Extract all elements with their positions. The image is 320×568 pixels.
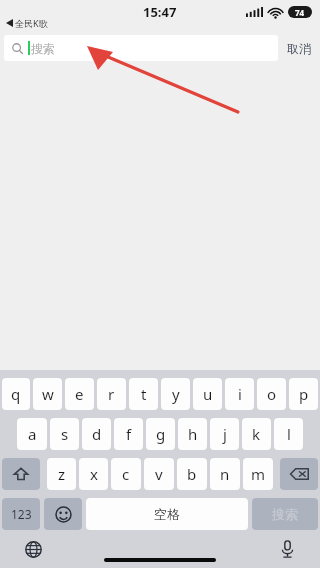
button[interactable]: u: [193, 378, 222, 410]
staticText: m: [251, 464, 266, 484]
button[interactable]: k: [242, 418, 271, 450]
staticText: i: [238, 384, 242, 404]
button[interactable]: f: [114, 418, 143, 450]
button[interactable]: a: [17, 418, 47, 450]
button[interactable]: 123: [2, 498, 40, 530]
staticText: l: [287, 424, 291, 444]
button[interactable]: i: [225, 378, 254, 410]
staticText: 15:47: [143, 3, 177, 21]
button[interactable]: t: [129, 378, 158, 410]
staticText: v: [155, 464, 163, 484]
staticText: z: [58, 464, 66, 484]
button[interactable]: Delete: [280, 458, 318, 490]
staticText: a: [28, 424, 37, 444]
staticText: h: [188, 424, 198, 444]
staticText: e: [75, 384, 84, 404]
button[interactable]: o: [257, 378, 286, 410]
button[interactable]: w: [33, 378, 62, 410]
button[interactable]: l: [274, 418, 303, 450]
button[interactable]: Emoji: [44, 498, 82, 530]
staticText: n: [220, 464, 230, 484]
button[interactable]: y: [161, 378, 190, 410]
button[interactable]: h: [178, 418, 207, 450]
staticText: 取消: [287, 41, 311, 56]
button[interactable]: Shift: [2, 458, 40, 490]
staticText: c: [122, 464, 130, 484]
button[interactable]: Voice input: [274, 536, 300, 562]
button[interactable]: d: [82, 418, 111, 450]
button[interactable]: v: [144, 458, 174, 490]
button[interactable]: n: [210, 458, 240, 490]
staticText: 74: [295, 7, 305, 18]
staticText: 搜索: [31, 41, 55, 56]
button[interactable]: Switch keyboard language: [20, 536, 46, 562]
staticText: j: [223, 424, 227, 444]
button[interactable]: p: [289, 378, 318, 410]
button[interactable]: e: [65, 378, 94, 410]
staticText: 空格: [154, 506, 180, 522]
staticText: y: [172, 384, 180, 404]
button[interactable]: r: [97, 378, 126, 410]
button[interactable]: g: [146, 418, 175, 450]
button[interactable]: 取消: [278, 37, 320, 60]
button[interactable]: m: [243, 458, 273, 490]
button[interactable]: 全民K歌: [6, 17, 48, 29]
button[interactable]: s: [50, 418, 79, 450]
staticText: f: [126, 424, 132, 444]
button[interactable]: 空格: [86, 498, 248, 530]
staticText: b: [187, 464, 197, 484]
staticText: x: [90, 464, 98, 484]
staticText: t: [141, 384, 147, 404]
button[interactable]: x: [79, 458, 108, 490]
button[interactable]: q: [2, 378, 30, 410]
staticText: p: [299, 384, 309, 404]
button[interactable]: 搜索: [252, 498, 318, 530]
staticText: g: [156, 424, 166, 444]
button[interactable]: z: [47, 458, 76, 490]
staticText: o: [267, 384, 277, 404]
staticText: s: [61, 424, 69, 444]
button[interactable]: 搜索: [4, 35, 278, 61]
staticText: 搜索: [272, 506, 298, 522]
staticText: k: [252, 424, 261, 444]
staticText: r: [108, 384, 115, 404]
button[interactable]: c: [111, 458, 141, 490]
staticText: q: [11, 384, 21, 404]
button[interactable]: b: [177, 458, 207, 490]
button[interactable]: j: [210, 418, 239, 450]
staticText: w: [42, 384, 54, 404]
staticText: u: [203, 384, 213, 404]
staticText: d: [92, 424, 102, 444]
staticText: 全民K歌: [15, 17, 48, 29]
staticText: 123: [11, 506, 32, 522]
